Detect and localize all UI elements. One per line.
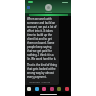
- button[interactable]: Profile photo: [45, 4, 52, 11]
- button[interactable]: App icon: [27, 87, 31, 91]
- button[interactable]: When we work with someone and build an a…: [27, 17, 57, 83]
- button[interactable]: App icon: [35, 87, 39, 91]
- staticText: That is the kind of thing that gets look…: [27, 63, 57, 79]
- staticText: Yesterday 7:26 PM: [29, 80, 51, 83]
- button[interactable]: App icon: [42, 87, 46, 91]
- staticText: When we work with someone and build an a…: [27, 17, 57, 61]
- button[interactable]: App icon: [65, 87, 69, 91]
- button[interactable]: App icon: [57, 87, 61, 91]
- button[interactable]: Back: [27, 6, 30, 9]
- button[interactable]: App icon: [50, 87, 54, 91]
